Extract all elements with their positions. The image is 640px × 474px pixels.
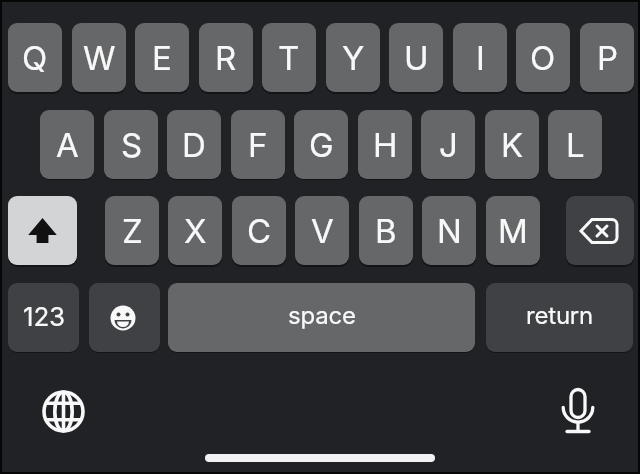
button[interactable]: R	[199, 23, 253, 92]
staticText: M	[498, 211, 528, 251]
button[interactable]: D	[167, 110, 221, 179]
button[interactable]: U	[389, 23, 443, 92]
staticText: X	[184, 211, 207, 251]
staticText: G	[309, 125, 334, 165]
staticText: 123	[23, 301, 65, 332]
button[interactable]: M	[486, 196, 540, 265]
staticText: T	[278, 38, 300, 78]
button[interactable]: H	[358, 110, 412, 179]
button[interactable]: N	[422, 196, 476, 265]
staticText: B	[375, 211, 397, 251]
staticText: space	[288, 301, 356, 330]
button[interactable]: T	[262, 23, 316, 92]
button[interactable]: return	[486, 283, 633, 352]
button[interactable]: I	[453, 23, 507, 92]
staticText: H	[373, 125, 398, 165]
staticText: J	[439, 125, 458, 165]
staticText: Z	[122, 211, 143, 251]
staticText: D	[182, 125, 206, 165]
button[interactable]: C	[232, 196, 286, 265]
staticText: C	[247, 211, 271, 251]
staticText: O	[530, 38, 556, 78]
button[interactable]: S	[104, 110, 158, 179]
button[interactable]: P	[580, 23, 634, 92]
button[interactable]: W	[72, 23, 126, 92]
staticText: V	[311, 211, 334, 251]
staticText: N	[437, 211, 462, 251]
button[interactable]: Y	[326, 23, 380, 92]
button[interactable]: V	[295, 196, 349, 265]
staticText: E	[152, 38, 172, 78]
button[interactable]: Q	[8, 23, 62, 92]
button[interactable]: O	[516, 23, 570, 92]
button[interactable]: G	[294, 110, 348, 179]
button[interactable]: 123	[8, 283, 79, 352]
staticText: K	[501, 125, 523, 165]
button[interactable]	[8, 196, 77, 265]
staticText: I	[476, 38, 485, 78]
staticText: A	[56, 125, 79, 165]
button[interactable]: A	[40, 110, 94, 179]
staticText: R	[215, 38, 237, 78]
button[interactable]	[89, 283, 160, 352]
button[interactable]: B	[359, 196, 413, 265]
button[interactable]: Z	[105, 196, 159, 265]
button[interactable]: L	[548, 110, 602, 179]
staticText: P	[597, 38, 618, 78]
button[interactable]: K	[485, 110, 539, 179]
button[interactable]: X	[168, 196, 222, 265]
staticText: S	[121, 125, 142, 165]
staticText: U	[404, 38, 429, 78]
button[interactable]	[566, 196, 634, 265]
staticText: return	[526, 301, 594, 330]
staticText: L	[566, 125, 585, 165]
button[interactable]: space	[168, 283, 475, 352]
staticText: Q	[22, 38, 48, 78]
button[interactable]: F	[231, 110, 285, 179]
button[interactable]: E	[135, 23, 189, 92]
button[interactable]: J	[421, 110, 475, 179]
staticText: Y	[342, 38, 365, 78]
staticText: W	[83, 38, 116, 78]
staticText: F	[248, 125, 268, 165]
